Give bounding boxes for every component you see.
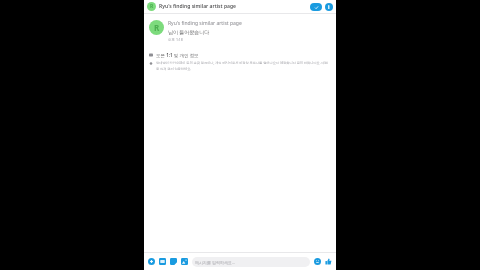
button[interactable]: 메시지를 입력하세요... (192, 257, 310, 267)
button[interactable]: Gallery (158, 257, 167, 266)
staticText: Ryu's finding similar artist page (168, 20, 242, 27)
staticText: R (154, 22, 160, 33)
button[interactable]: Add (147, 257, 156, 266)
staticText: 메시지를 입력하세요... (195, 260, 236, 265)
button[interactable]: Like (324, 257, 333, 266)
button[interactable]: R (144, 17, 336, 44)
staticText: 오후 1:18 (168, 37, 183, 42)
button[interactable]: Photo (180, 257, 189, 266)
staticText: 님이 들어왔습니다 (168, 29, 210, 36)
button[interactable]: Info (325, 3, 333, 11)
staticText: R (150, 3, 154, 10)
staticText: i (328, 4, 330, 11)
button[interactable]: Verified (310, 3, 322, 11)
staticText: Ryu's finding similar artist page (159, 3, 308, 10)
button[interactable]: Sticker (169, 257, 178, 266)
staticText: 오픈 1:1 및 개인 정보 (156, 52, 199, 58)
button[interactable]: Emoji (313, 257, 322, 266)
staticText: 상대방이 카카오페이 등의 송금 링크이나, 개인 메시지로서 비정상 루트나를… (156, 61, 331, 71)
